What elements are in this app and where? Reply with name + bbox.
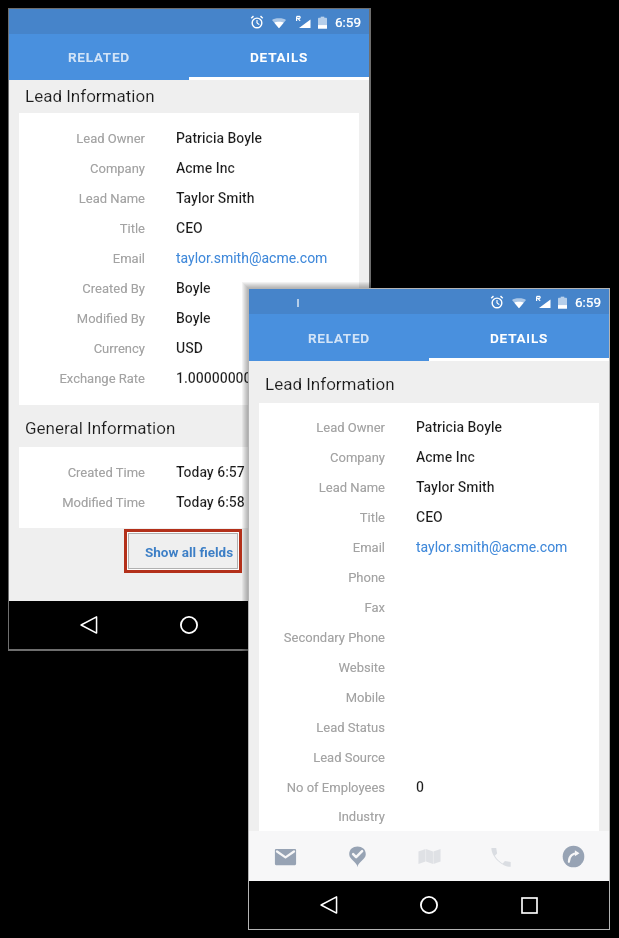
- button[interactable]: Recents: [520, 881, 538, 929]
- button[interactable]: Lead Owner: [259, 412, 599, 442]
- staticText: Phone: [259, 570, 385, 585]
- staticText: Taylor Smith: [416, 479, 495, 495]
- staticText: Lead Information: [265, 374, 395, 394]
- button[interactable]: Back: [80, 601, 98, 649]
- staticText: taylor.smith@acme.com: [416, 539, 568, 555]
- button[interactable]: Share: [537, 831, 609, 881]
- staticText: Title: [259, 510, 385, 525]
- button[interactable]: Lead Owner: [19, 123, 359, 153]
- button[interactable]: Back: [320, 881, 338, 929]
- staticText: Lead Status: [259, 720, 385, 735]
- staticText: Patricia Boyle: [416, 419, 503, 435]
- staticText: Lead Owner: [259, 420, 385, 435]
- button[interactable]: Map: [393, 831, 465, 881]
- button[interactable]: Phone: [259, 562, 599, 592]
- staticText: Exchange Rate: [19, 371, 145, 386]
- button[interactable]: Email: [19, 243, 359, 273]
- staticText: No of Employees: [259, 780, 385, 795]
- staticText: Boyle: [176, 280, 211, 296]
- staticText: Title: [19, 221, 145, 236]
- staticText: Lead Owner: [19, 131, 145, 146]
- button[interactable]: Secondary Phone: [259, 622, 599, 652]
- button[interactable]: Email: [259, 532, 599, 562]
- staticText: Acme Inc: [416, 449, 475, 465]
- button[interactable]: Created Time: [19, 457, 359, 487]
- button[interactable]: Home: [180, 601, 198, 649]
- button[interactable]: DETAILS: [189, 34, 369, 80]
- button[interactable]: RELATED: [9, 34, 189, 80]
- staticText: DETAILS: [490, 330, 549, 346]
- staticText: RELATED: [308, 330, 370, 346]
- button[interactable]: Lead Source: [259, 742, 599, 772]
- staticText: 6:59: [335, 14, 362, 30]
- staticText: Secondary Phone: [259, 630, 385, 645]
- staticText: Email: [259, 540, 385, 555]
- staticText: Created Time: [19, 465, 145, 480]
- staticText: Today 6:58 pm: [176, 494, 269, 510]
- button[interactable]: Lead Status: [259, 712, 599, 742]
- staticText: Website: [259, 660, 385, 675]
- button[interactable]: Show all fields: [128, 533, 238, 569]
- staticText: General Information: [25, 418, 176, 438]
- staticText: Mobile: [259, 690, 385, 705]
- staticText: Today 6:57 pm: [176, 464, 269, 480]
- button[interactable]: Mobile: [259, 682, 599, 712]
- button[interactable]: Check in: [321, 831, 393, 881]
- button[interactable]: Lead Name: [19, 183, 359, 213]
- button[interactable]: DETAILS: [429, 314, 609, 361]
- staticText: Company: [19, 161, 145, 176]
- button[interactable]: RELATED: [249, 314, 429, 361]
- staticText: Created By: [19, 281, 145, 296]
- button[interactable]: Modified Time: [19, 487, 359, 517]
- staticText: Show all fields: [145, 544, 234, 560]
- button[interactable]: No of Employees: [259, 772, 599, 802]
- staticText: taylor.smith@acme.com: [176, 250, 328, 266]
- staticText: Modified By: [19, 311, 145, 326]
- staticText: Boyle: [176, 310, 211, 326]
- button[interactable]: Home: [420, 881, 438, 929]
- staticText: Lead Name: [259, 480, 385, 495]
- staticText: Taylor Smith: [176, 190, 255, 206]
- button[interactable]: Website: [259, 652, 599, 682]
- staticText: Lead Information: [25, 86, 155, 106]
- button[interactable]: Call: [465, 831, 537, 881]
- staticText: Acme Inc: [176, 160, 235, 176]
- staticText: USD: [176, 340, 203, 356]
- staticText: Modified Time: [19, 495, 145, 510]
- staticText: 1.00000000: [176, 370, 252, 386]
- button[interactable]: Company: [259, 442, 599, 472]
- staticText: Patricia Boyle: [176, 130, 263, 146]
- staticText: CEO: [176, 220, 203, 236]
- staticText: CEO: [416, 509, 443, 525]
- button[interactable]: Exchange Rate: [19, 363, 359, 393]
- button[interactable]: Email: [249, 831, 321, 881]
- staticText: Lead Name: [19, 191, 145, 206]
- staticText: Fax: [259, 600, 385, 615]
- staticText: 6:59: [575, 294, 602, 310]
- button[interactable]: Lead Name: [259, 472, 599, 502]
- staticText: 0: [416, 779, 424, 795]
- button[interactable]: Created By: [19, 273, 359, 303]
- staticText: DETAILS: [250, 49, 309, 65]
- button[interactable]: Modified By: [19, 303, 359, 333]
- button[interactable]: Company: [19, 153, 359, 183]
- staticText: Industry: [259, 809, 385, 824]
- button[interactable]: Fax: [259, 592, 599, 622]
- staticText: Company: [259, 450, 385, 465]
- staticText: Currency: [19, 341, 145, 356]
- button[interactable]: Currency: [19, 333, 359, 363]
- button[interactable]: Title: [19, 213, 359, 243]
- staticText: Email: [19, 251, 145, 266]
- button[interactable]: Title: [259, 502, 599, 532]
- staticText: Lead Source: [259, 750, 385, 765]
- button[interactable]: Industry: [259, 802, 599, 831]
- staticText: RELATED: [68, 49, 130, 65]
